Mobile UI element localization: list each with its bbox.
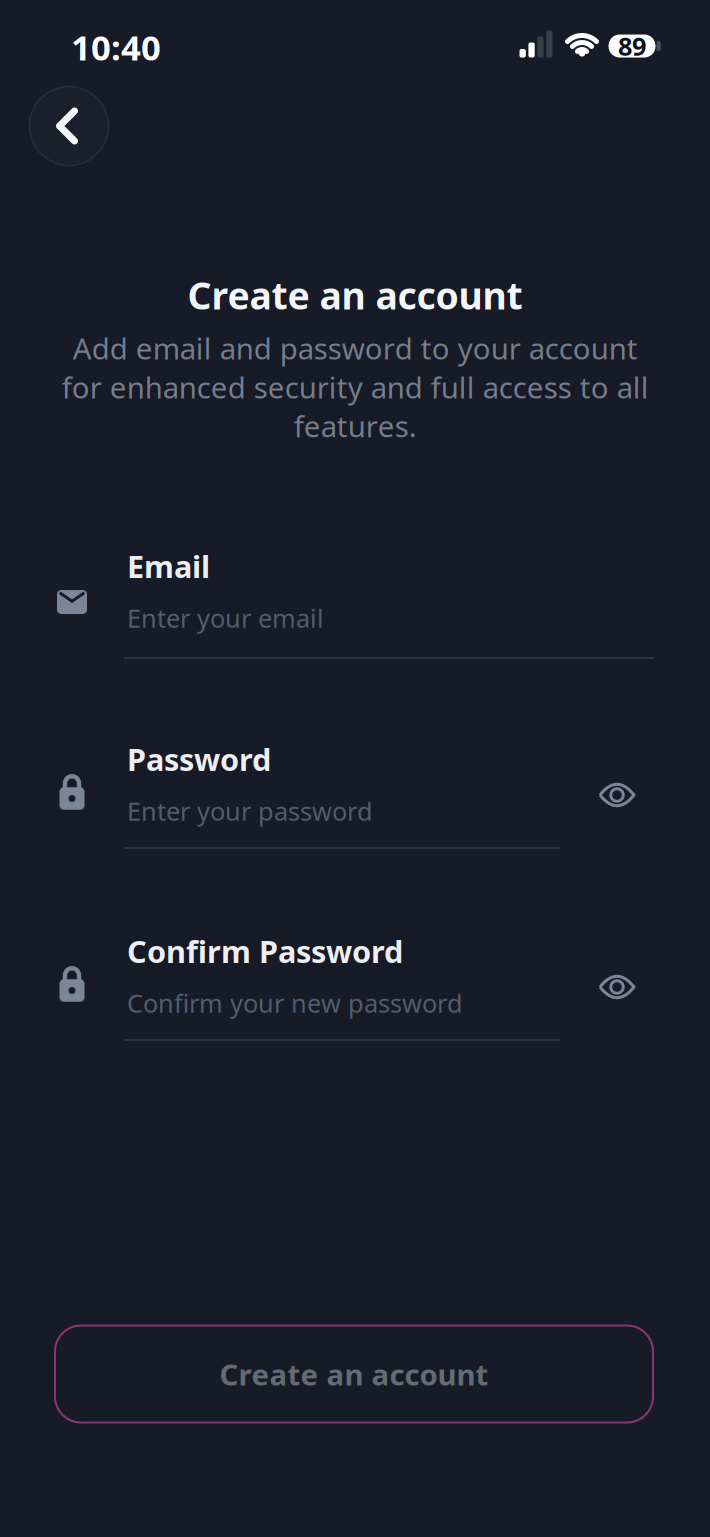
staticText: Enter your email: [127, 601, 324, 635]
staticText: Email: [127, 546, 210, 586]
button[interactable]: Show password: [589, 965, 645, 1009]
staticText: Add email and password to your account f…: [61, 329, 648, 445]
button[interactable]: Confirm your new password: [124, 969, 560, 1045]
button[interactable]: Show password: [589, 773, 645, 817]
button[interactable]: Enter your password: [124, 777, 560, 853]
staticText: Create an account: [219, 1354, 488, 1393]
staticText: Create an account: [187, 270, 522, 320]
button[interactable]: Create an account: [55, 1325, 653, 1422]
staticText: 89: [618, 29, 646, 63]
staticText: Password: [127, 739, 271, 779]
staticText: Enter your password: [127, 794, 373, 828]
button[interactable]: Back: [29, 86, 109, 166]
button[interactable]: Enter your email: [124, 584, 654, 660]
staticText: Confirm your new password: [127, 986, 463, 1020]
staticText: Confirm Password: [127, 931, 403, 971]
staticText: 10:40: [71, 24, 161, 70]
